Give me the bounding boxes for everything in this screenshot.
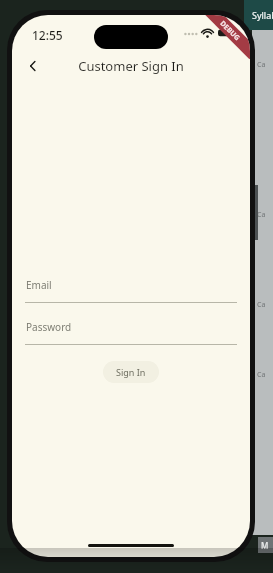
button[interactable]: Password — [25, 320, 237, 345]
button[interactable]: Sign In — [103, 361, 159, 383]
staticText: Email — [26, 278, 52, 292]
staticText: Sign In — [116, 366, 146, 378]
staticText: 12:55 — [32, 27, 63, 43]
button[interactable]: Back — [18, 51, 48, 81]
staticText: Syllab — [252, 9, 273, 21]
staticText: Customer Sign In — [78, 57, 184, 75]
staticText: DEBUG — [218, 19, 242, 43]
staticText: Password — [26, 320, 72, 334]
staticText: Ca — [257, 210, 266, 220]
button[interactable]: Email — [25, 278, 237, 303]
staticText: Ca — [257, 370, 266, 380]
staticText: Ca — [257, 60, 266, 70]
staticText: Ca — [257, 300, 266, 310]
staticText: M — [261, 540, 269, 551]
